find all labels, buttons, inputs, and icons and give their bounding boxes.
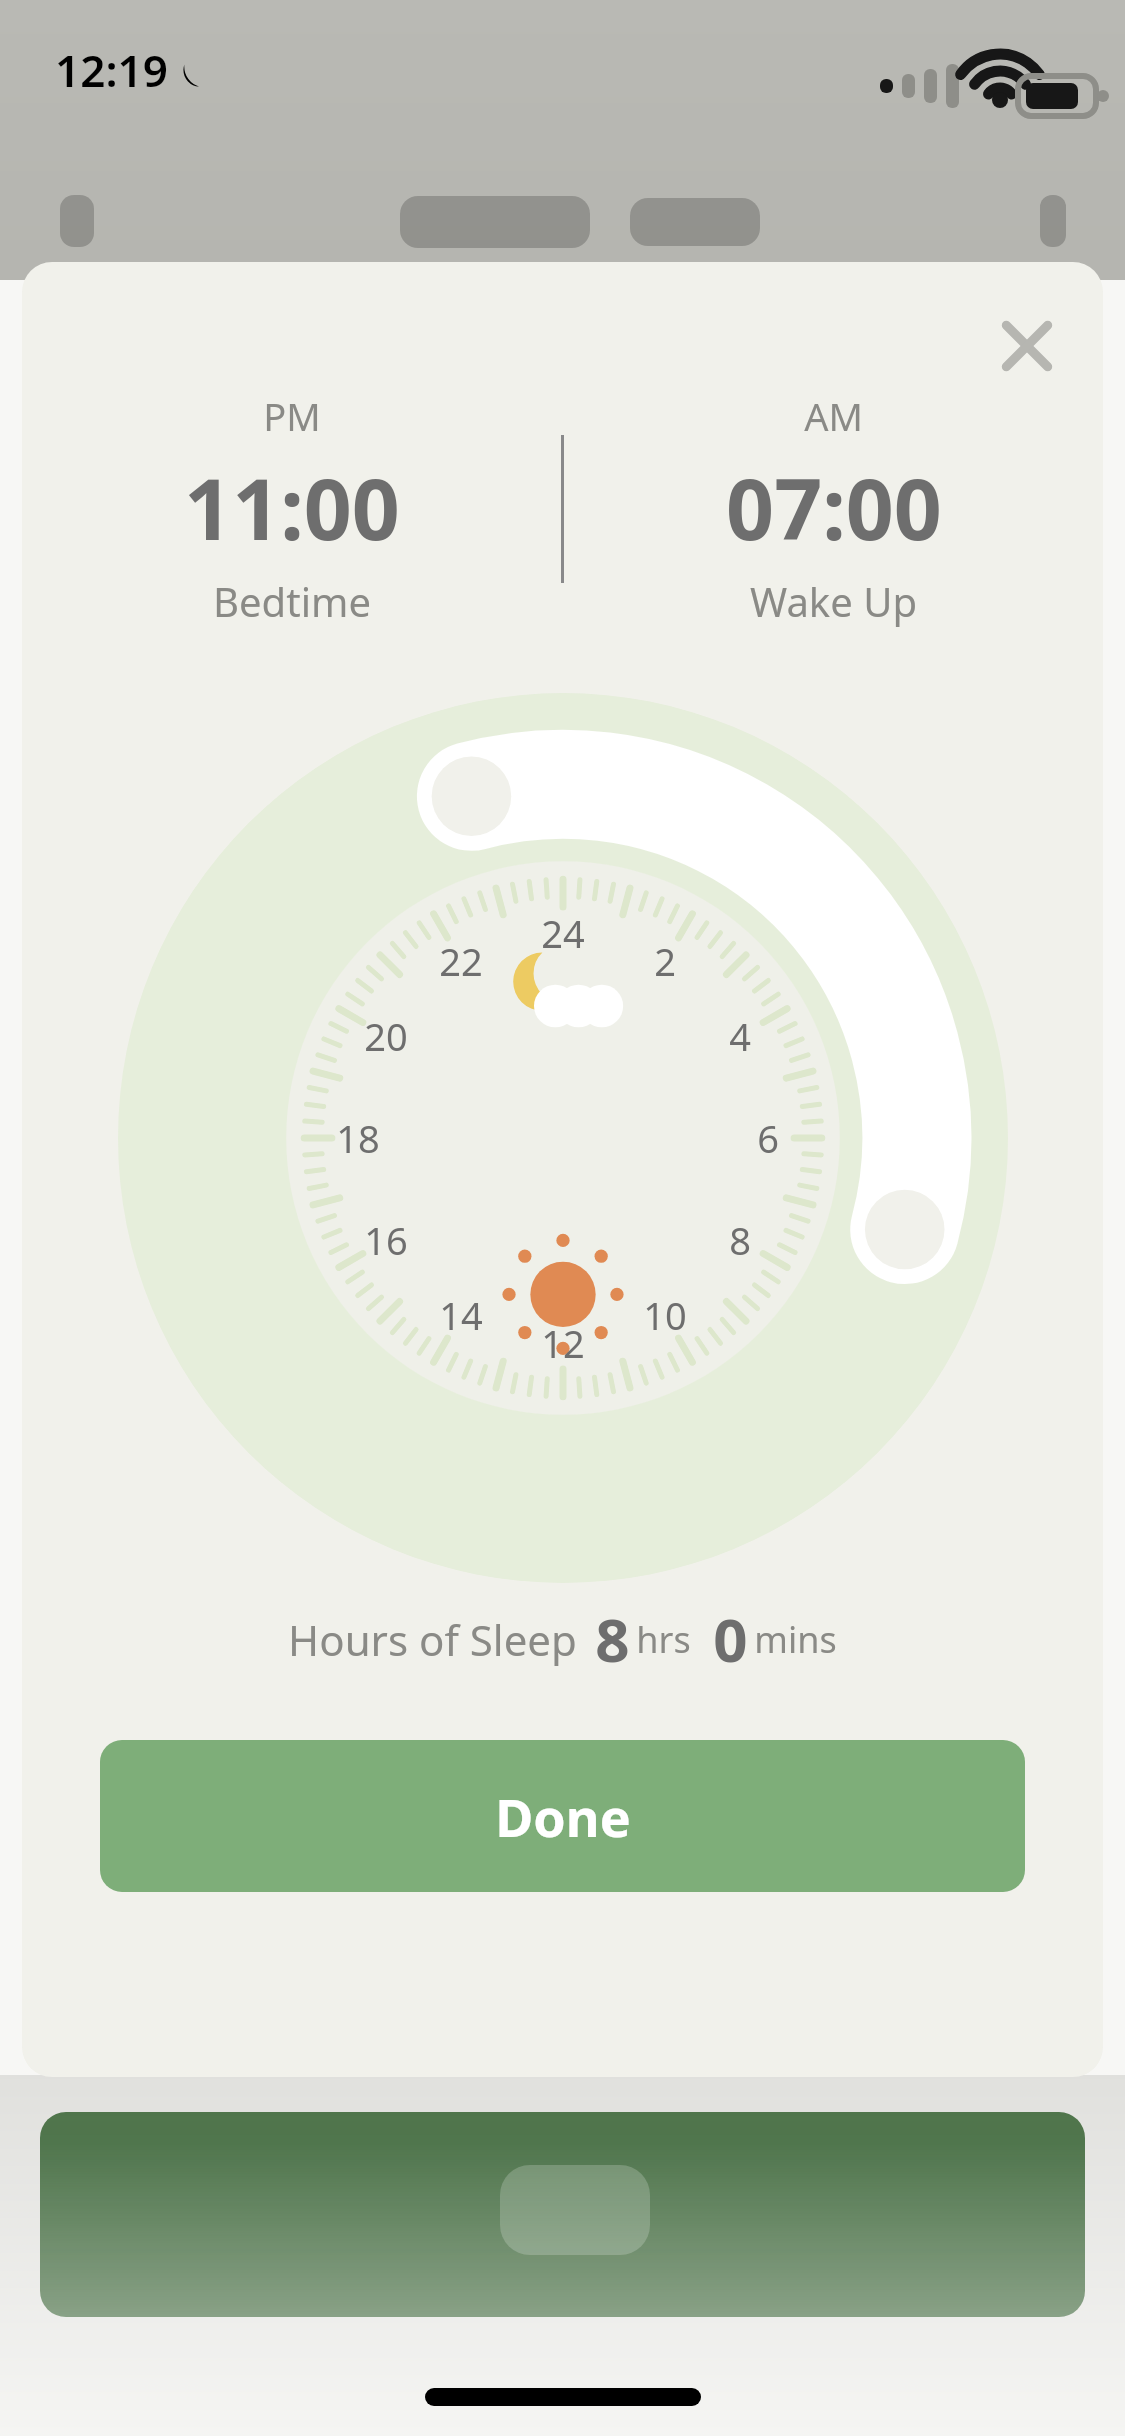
staticText: Bedtime [213, 574, 371, 628]
staticText: 07:00 [726, 450, 942, 564]
staticText: 2 [654, 935, 676, 987]
staticText: 20 [364, 1010, 408, 1062]
button[interactable]: Done [100, 1740, 1025, 1892]
staticText: 8 [729, 1214, 751, 1266]
staticText: 0 [713, 1598, 748, 1680]
staticText: 18 [336, 1112, 380, 1164]
staticText: mins [754, 1615, 837, 1664]
staticText: 10 [643, 1289, 687, 1341]
staticText: Done [495, 1781, 631, 1852]
staticText: AM [804, 390, 863, 442]
staticText: 12:19 [55, 40, 168, 100]
staticText: Wake Up [750, 574, 917, 628]
staticText: 22 [439, 935, 483, 987]
staticText: 11:00 [184, 450, 400, 564]
staticText: 14 [439, 1289, 483, 1341]
staticText: hrs [636, 1615, 691, 1664]
staticText: 24 [541, 907, 585, 959]
staticText: 4 [729, 1010, 751, 1062]
staticText: 16 [364, 1214, 408, 1266]
button[interactable]: Close [979, 298, 1075, 394]
staticText: Hours of Sleep [288, 1611, 577, 1668]
staticText: 12 [541, 1317, 585, 1369]
staticText: PM [263, 390, 321, 442]
staticText: 6 [757, 1112, 779, 1164]
staticText: 8 [595, 1598, 630, 1680]
